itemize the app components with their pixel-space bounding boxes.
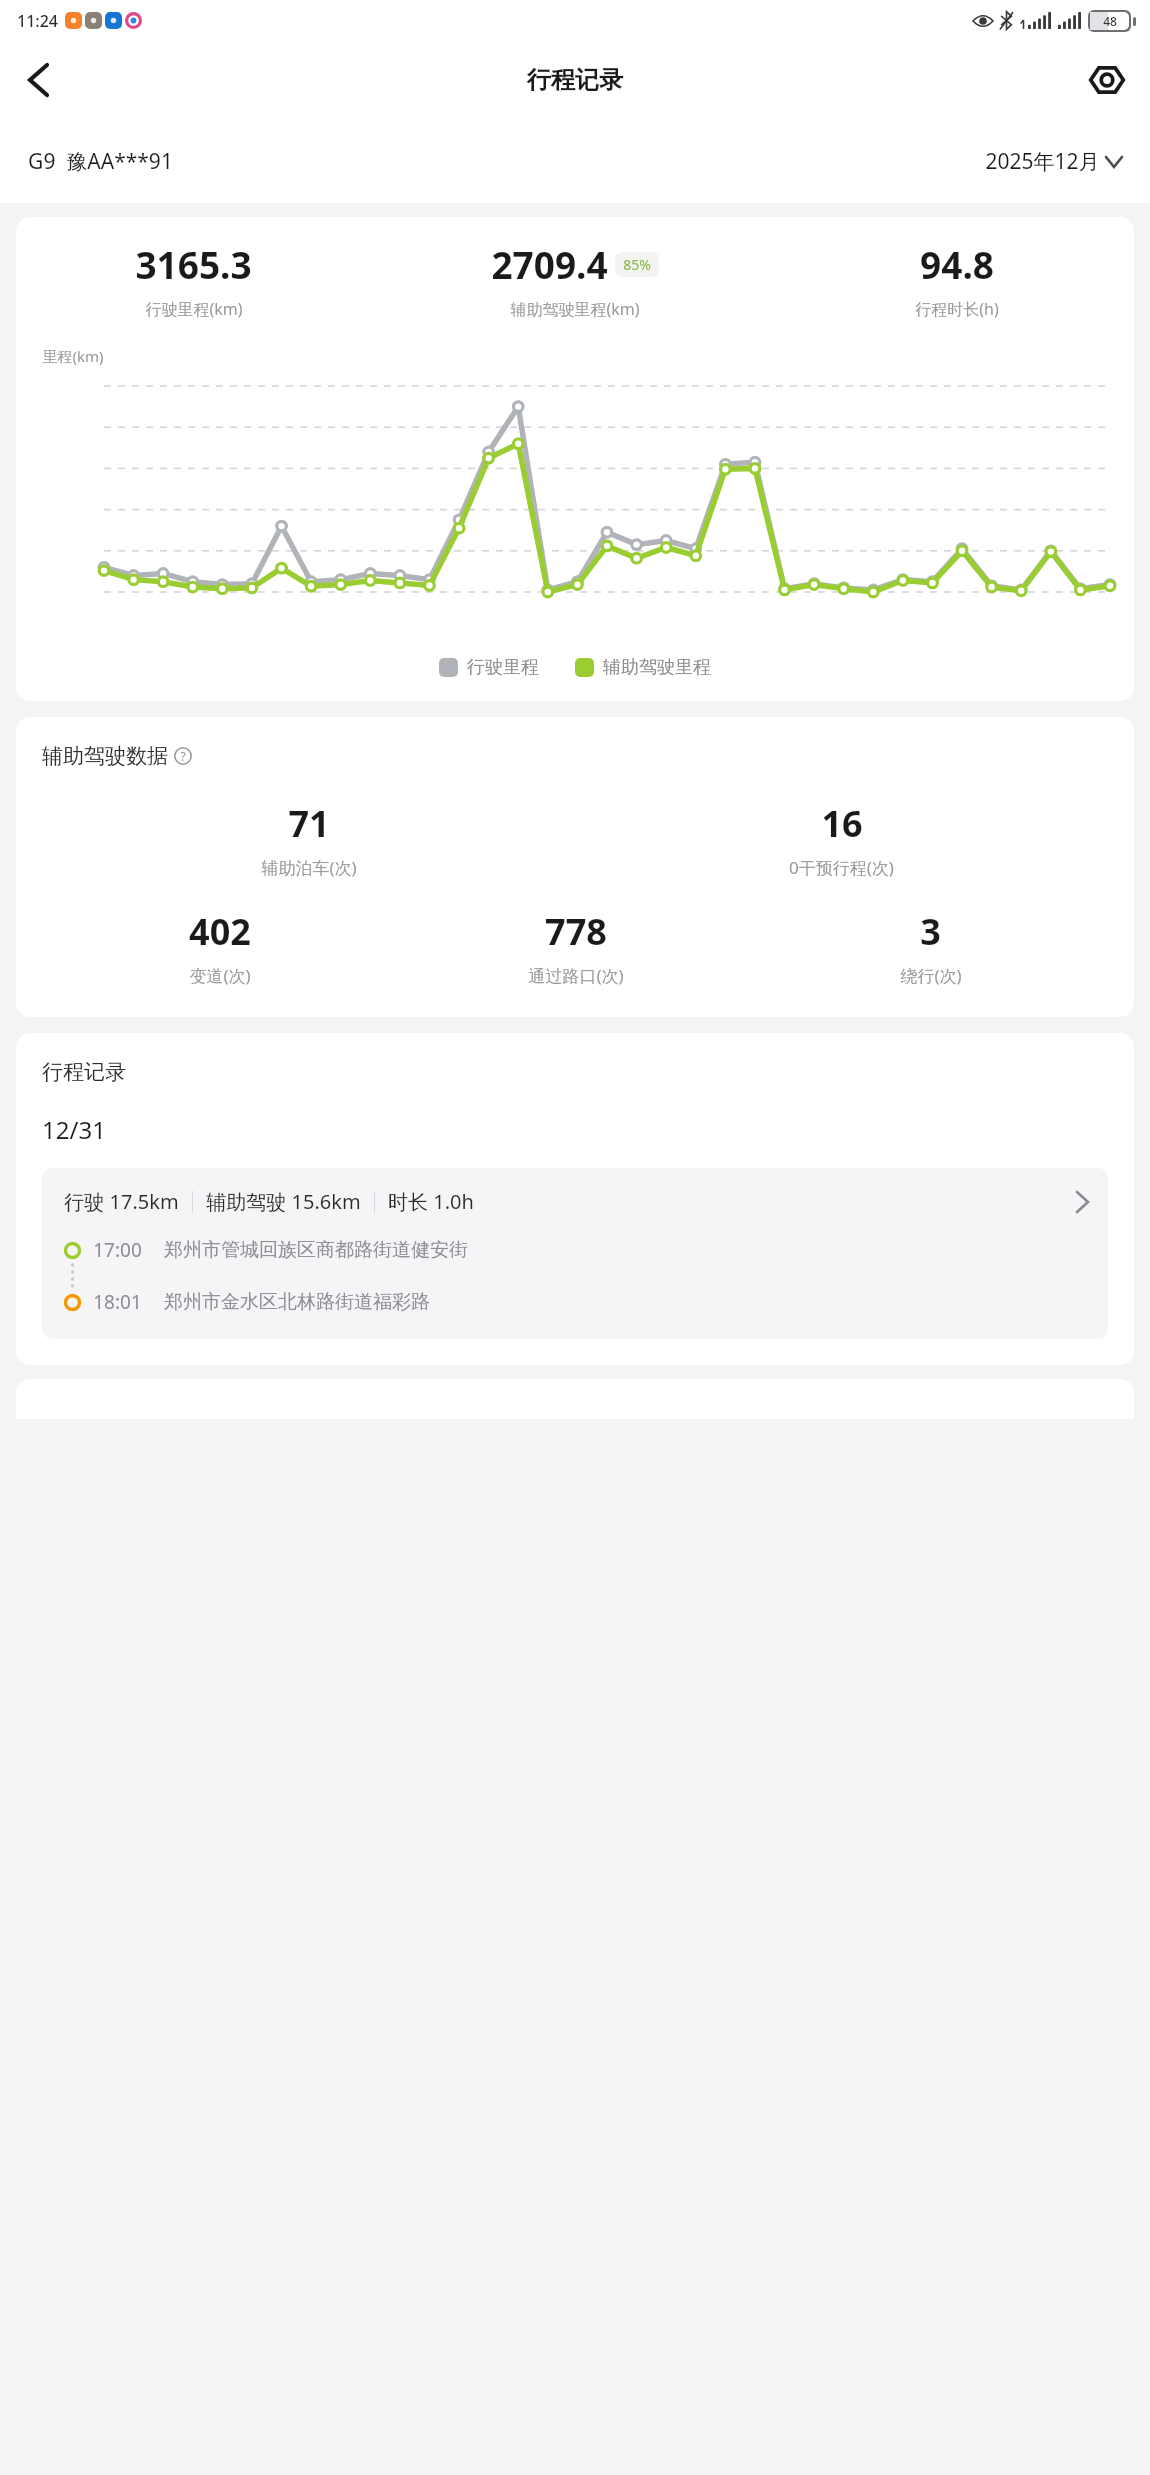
staticText: 行程记录 [42,1059,126,1085]
staticText: 2025年12月 [985,147,1100,176]
staticText: 94.8 [920,239,994,289]
staticText: 行驶 17.5km [64,1188,179,1215]
button[interactable]: Settings [1078,51,1136,109]
staticText: 里程(km) [42,346,104,366]
staticText: 3 [920,907,941,956]
staticText: 行驶里程 [467,656,539,679]
button[interactable]: Help [172,745,194,767]
staticText: 郑州市管城回族区商都路街道健安街 [164,1238,468,1262]
staticText: 绕行(次) [900,964,962,987]
staticText: 辅助驾驶数据 [42,743,168,769]
staticText: 郑州市金水区北林路街道福彩路 [164,1290,430,1314]
staticText: 变道(次) [189,964,251,987]
staticText: 行驶里程(km) [145,298,243,320]
staticText: 通过路口(次) [528,964,624,987]
staticText: 时长 1.0h [388,1188,474,1215]
staticText: 778 [545,907,607,956]
staticText: 12/31 [42,1113,106,1146]
staticText: 辅助驾驶 15.6km [206,1188,361,1215]
staticText: 48 [1103,13,1117,29]
staticText: 辅助驾驶里程 [603,656,711,679]
staticText: 71 [288,799,330,848]
staticText: G9 豫AA***91 [28,147,173,176]
staticText: 3165.3 [135,239,252,289]
staticText: 行程时长(h) [915,298,999,320]
staticText: 18:01 [93,1289,142,1315]
staticText: 辅助驾驶里程(km) [510,298,640,320]
staticText: 0干预行程(次) [789,856,894,879]
staticText: 85% [623,255,651,274]
staticText: 辅助泊车(次) [261,856,357,879]
staticText: 17:00 [93,1237,142,1263]
button[interactable]: 行驶 17.5km [42,1168,1108,1339]
staticText: 11:24 [17,10,58,32]
staticText: ? [180,748,186,764]
staticText: 16 [821,799,863,848]
staticText: 行程记录 [527,65,623,95]
button[interactable]: 2025年12月 [981,143,1126,180]
staticText: 2709.4 [491,239,608,289]
staticText: 402 [189,907,251,956]
button[interactable]: Back [8,50,68,110]
